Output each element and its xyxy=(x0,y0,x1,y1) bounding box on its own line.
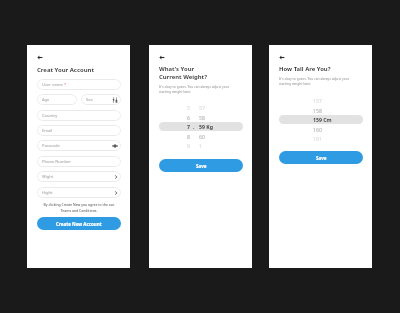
button[interactable]: User name xyxy=(37,79,121,90)
staticText: 57 xyxy=(199,104,205,111)
staticText: * xyxy=(64,82,67,88)
staticText: Save xyxy=(196,163,207,169)
staticText: What's Your Current Weight? xyxy=(159,65,207,81)
button[interactable]: Email xyxy=(37,125,121,136)
button[interactable]: 157 xyxy=(279,96,363,105)
staticText: 59 Kg xyxy=(199,123,214,130)
staticText: Create New Account xyxy=(56,221,102,227)
button[interactable]: 5 xyxy=(159,103,243,112)
staticText: 159 Cm xyxy=(313,116,332,123)
staticText: 5 xyxy=(187,104,190,111)
button[interactable]: Hight xyxy=(37,187,121,198)
button[interactable]: Sex xyxy=(81,94,121,105)
staticText: 6 xyxy=(187,114,190,121)
button[interactable]: Back xyxy=(37,54,44,61)
staticText: It's okay to guess. You can always adjus… xyxy=(159,84,243,94)
button[interactable]: Save xyxy=(159,159,243,172)
button[interactable]: Back xyxy=(159,54,166,61)
button[interactable]: 7 xyxy=(159,122,243,131)
button[interactable]: Create New Account xyxy=(37,217,121,230)
staticText: By clicking Create New you agree to the … xyxy=(37,202,121,213)
button[interactable]: 6 xyxy=(159,113,243,122)
staticText: 58 xyxy=(199,114,205,121)
staticText: 9 xyxy=(187,142,190,149)
button[interactable]: 159 Cm xyxy=(279,115,363,124)
button[interactable]: Passcode xyxy=(37,140,121,151)
staticText: 1 xyxy=(199,142,202,149)
button[interactable]: 8 xyxy=(159,132,243,141)
staticText: 160 xyxy=(313,126,322,133)
button[interactable]: Age xyxy=(37,94,77,105)
button[interactable]: Country xyxy=(37,110,121,121)
staticText: It's okay to guess. You can always adjus… xyxy=(279,76,363,86)
staticText: 158 xyxy=(313,107,322,114)
staticText: How Tall Are You? xyxy=(279,65,331,73)
button[interactable]: Back xyxy=(279,54,286,61)
staticText: Wight xyxy=(42,174,54,180)
staticText: Passcode xyxy=(42,143,60,149)
staticText: Creat Your Account xyxy=(37,66,94,74)
staticText: 7 xyxy=(187,123,190,130)
button[interactable]: Save xyxy=(279,151,363,164)
button[interactable]: Phone Number xyxy=(37,156,121,167)
staticText: Save xyxy=(316,155,327,161)
staticText: 157 xyxy=(313,97,322,104)
button[interactable]: 158 xyxy=(279,106,363,115)
button[interactable]: 160 xyxy=(279,125,363,134)
staticText: 60 xyxy=(199,133,205,140)
staticText: User name xyxy=(42,82,64,88)
staticText: 8 xyxy=(187,133,190,140)
button[interactable]: Wight xyxy=(37,171,121,182)
staticText: Sex xyxy=(86,97,93,103)
staticText: Age xyxy=(42,97,50,103)
staticText: Country xyxy=(42,113,58,119)
staticText: Email xyxy=(42,128,53,134)
button[interactable]: 161 xyxy=(279,134,363,143)
staticText: Hight xyxy=(42,190,53,196)
staticText: Phone Number xyxy=(42,159,72,165)
staticText: . xyxy=(193,123,195,130)
staticText: 161 xyxy=(313,135,322,142)
